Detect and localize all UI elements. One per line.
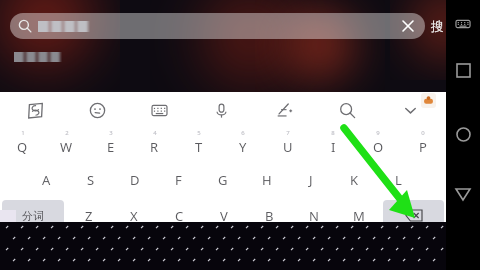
staticText: K bbox=[350, 171, 359, 189]
staticText: I bbox=[331, 138, 336, 156]
staticText: Z bbox=[85, 207, 93, 225]
staticText: M bbox=[353, 207, 365, 225]
staticText: Q bbox=[17, 138, 28, 156]
button[interactable]: Sogou bbox=[4, 92, 66, 128]
button[interactable]: Collapse keyboard bbox=[379, 92, 442, 128]
staticText: E bbox=[107, 138, 115, 156]
staticText: 5 bbox=[197, 129, 201, 137]
staticText: V bbox=[220, 207, 228, 225]
staticText: 9 bbox=[376, 129, 380, 137]
staticText: 2 bbox=[65, 129, 69, 137]
button[interactable]: Search bbox=[316, 92, 379, 128]
button[interactable]: S bbox=[70, 164, 111, 195]
button[interactable]: Back bbox=[446, 182, 480, 206]
staticText: 7 bbox=[286, 129, 290, 137]
button[interactable]: V bbox=[203, 200, 245, 231]
button[interactable]: 搜 bbox=[428, 13, 446, 39]
staticText: C bbox=[175, 207, 184, 225]
staticText: Y bbox=[239, 138, 247, 156]
staticText: H bbox=[262, 171, 272, 189]
staticText: N bbox=[309, 207, 319, 225]
button[interactable]: D bbox=[114, 164, 155, 195]
button[interactable]: Keyboard bbox=[446, 12, 480, 36]
staticText: P bbox=[419, 138, 427, 156]
staticText: F bbox=[175, 171, 182, 189]
button[interactable]: 2 bbox=[46, 128, 87, 159]
staticText: G bbox=[218, 171, 228, 189]
button[interactable]: F bbox=[158, 164, 199, 195]
button[interactable]: Recents bbox=[446, 58, 480, 82]
staticText: T bbox=[195, 138, 203, 156]
staticText: B bbox=[265, 207, 274, 225]
staticText: 0 bbox=[421, 129, 425, 137]
staticText: L bbox=[395, 171, 402, 189]
staticText: U bbox=[283, 138, 293, 156]
button[interactable]: H bbox=[246, 164, 287, 195]
staticText: 4 bbox=[153, 129, 157, 137]
button[interactable]: Voice input bbox=[190, 92, 253, 128]
button[interactable]: K bbox=[334, 164, 375, 195]
button[interactable]: M bbox=[338, 200, 380, 231]
button[interactable]: Z bbox=[67, 200, 110, 231]
button[interactable]: Handwriting bbox=[253, 92, 316, 128]
button[interactable]: 8 bbox=[312, 128, 354, 159]
button[interactable]: 分词 bbox=[2, 200, 64, 231]
staticText: 分词 bbox=[22, 209, 44, 223]
staticText: X bbox=[130, 207, 138, 225]
button[interactable]: J bbox=[290, 164, 331, 195]
button[interactable]: 4 bbox=[134, 128, 175, 159]
staticText: O bbox=[373, 138, 384, 156]
staticText: 6 bbox=[241, 129, 245, 137]
staticText: R bbox=[150, 138, 159, 156]
button[interactable]: 5 bbox=[178, 128, 219, 159]
button[interactable]: Keyboard bbox=[128, 92, 190, 128]
button[interactable]: Clear bbox=[10, 13, 425, 39]
button[interactable]: Badge bbox=[421, 93, 436, 108]
button[interactable]: Backspace bbox=[383, 200, 444, 231]
button[interactable]: N bbox=[293, 200, 335, 231]
staticText: 3 bbox=[109, 129, 113, 137]
staticText: D bbox=[130, 171, 140, 189]
button[interactable]: 0 bbox=[402, 128, 444, 159]
button[interactable]: 6 bbox=[222, 128, 264, 159]
button[interactable]: G bbox=[202, 164, 243, 195]
button[interactable]: Emoji bbox=[66, 92, 128, 128]
button[interactable]: 3 bbox=[90, 128, 131, 159]
staticText: W bbox=[60, 138, 73, 156]
button[interactable]: Home bbox=[446, 122, 480, 146]
staticText: A bbox=[42, 171, 51, 189]
button[interactable]: 1 bbox=[2, 128, 43, 159]
button[interactable]: L bbox=[378, 164, 419, 195]
staticText: 搜 bbox=[431, 18, 444, 34]
button[interactable]: B bbox=[248, 200, 290, 231]
button[interactable]: A bbox=[26, 164, 67, 195]
staticText: 8 bbox=[331, 129, 335, 137]
button[interactable]: 7 bbox=[267, 128, 309, 159]
staticText: 1 bbox=[21, 129, 25, 137]
staticText: J bbox=[309, 171, 313, 189]
button[interactable]: C bbox=[158, 200, 200, 231]
button[interactable]: X bbox=[113, 200, 155, 231]
button[interactable]: Clear bbox=[399, 17, 417, 35]
staticText: S bbox=[87, 171, 95, 189]
button[interactable]: 9 bbox=[357, 128, 399, 159]
